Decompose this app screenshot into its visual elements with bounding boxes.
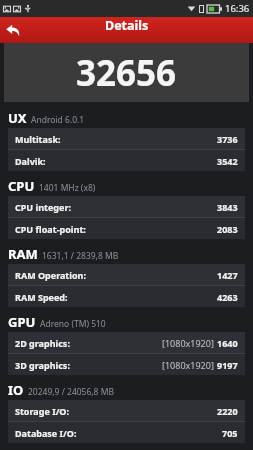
button[interactable]: 2D graphics:: [8, 332, 245, 353]
staticText: 1631,1 / 2839,8 MB: [42, 250, 119, 262]
staticText: 2D graphics:: [15, 337, 70, 349]
staticText: [1080x1920]: [162, 337, 214, 349]
staticText: 16:36: [225, 2, 250, 15]
staticText: RAM Operation:: [15, 269, 86, 281]
button[interactable]: Multitask:: [8, 128, 245, 149]
staticText: Android 6.0.1: [31, 114, 85, 126]
button[interactable]: CPU float-point:: [8, 218, 245, 239]
button[interactable]: RAM Speed:: [8, 286, 245, 307]
staticText: 3D graphics:: [15, 359, 70, 371]
button[interactable]: Database I/O:: [8, 422, 245, 443]
button[interactable]: Dalvik:: [8, 150, 245, 171]
button[interactable]: CPU integer:: [8, 196, 245, 217]
staticText: Dalvik:: [15, 155, 46, 167]
staticText: 2083: [217, 223, 238, 235]
staticText: CPU float-point:: [15, 223, 86, 235]
staticText: 3736: [217, 133, 238, 145]
staticText: 4263: [217, 291, 238, 303]
staticText: CPU: [8, 177, 35, 195]
staticText: 705: [222, 427, 238, 439]
staticText: Storage I/O:: [15, 405, 70, 417]
button[interactable]: 3D graphics:: [8, 354, 245, 375]
staticText: Details: [105, 17, 149, 34]
button[interactable]: RAM Operation:: [8, 264, 245, 285]
staticText: 3542: [217, 155, 238, 167]
staticText: Adreno (TM) 510: [40, 318, 106, 330]
staticText: 1401 MHz (x8): [39, 182, 96, 194]
staticText: CPU integer:: [15, 201, 71, 213]
staticText: Database I/O:: [15, 427, 77, 439]
staticText: GPU: [8, 313, 36, 331]
staticText: [1080x1920]: [162, 359, 214, 371]
staticText: RAM Speed:: [15, 291, 68, 303]
staticText: Multitask:: [15, 133, 61, 145]
staticText: 1427: [217, 269, 238, 281]
staticText: UX: [8, 109, 27, 127]
staticText: 32656: [76, 49, 177, 97]
staticText: 3843: [217, 201, 238, 213]
staticText: 9197: [217, 359, 238, 371]
button[interactable]: Storage I/O:: [8, 400, 245, 421]
staticText: 1640: [217, 337, 238, 349]
staticText: 2220: [217, 405, 238, 417]
staticText: 20249,9 / 24056,8 MB: [28, 386, 114, 398]
staticText: IO: [8, 381, 24, 399]
staticText: RAM: [8, 245, 38, 263]
button[interactable]: Back: [0, 17, 26, 43]
